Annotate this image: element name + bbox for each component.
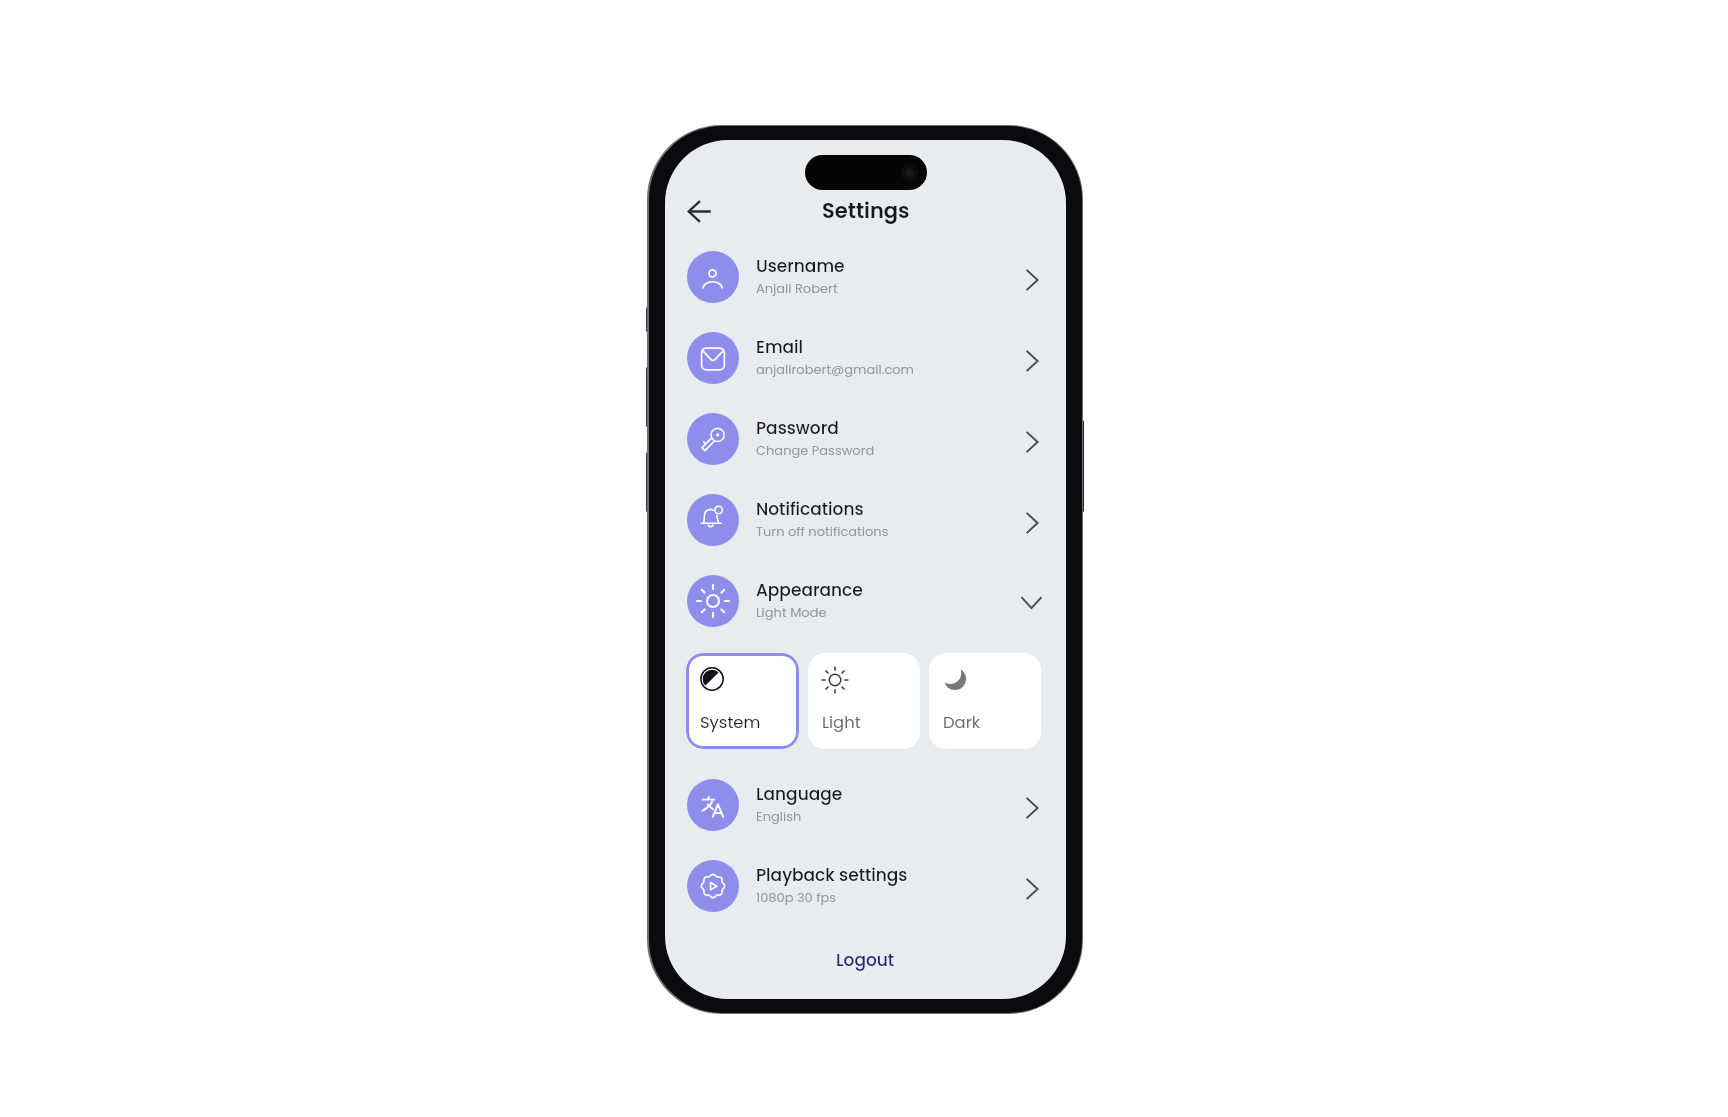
staticText: Light Mode [756,603,827,621]
button[interactable]: System [686,653,799,749]
other: Open [1020,797,1042,819]
button[interactable]: Notifications [665,479,1066,560]
staticText: Email [756,335,804,359]
button[interactable]: Username [665,236,1066,317]
button[interactable]: Playback settings [665,845,1066,926]
button[interactable]: Back [676,188,722,234]
other: Open [1020,878,1042,900]
staticText: 1080p 30 fps [756,888,837,906]
other: Open [1020,512,1042,534]
button[interactable]: Appearance [665,560,1066,641]
staticText: System [700,711,761,734]
other: Open [1020,350,1042,372]
staticText: English [756,807,802,825]
staticText: Settings [822,196,910,225]
button[interactable]: Dark [929,653,1041,749]
button[interactable]: Light [808,653,920,749]
staticText: Dark [943,711,981,734]
staticText: Change Password [756,441,875,459]
staticText: Turn off notifications [756,522,889,540]
staticText: Password [756,416,839,440]
staticText: Playback settings [756,863,908,887]
staticText: Anjali Robert [756,279,838,297]
staticText: Username [756,254,845,278]
other: Open [1020,431,1042,453]
button[interactable]: Email [665,317,1066,398]
staticText: Appearance [756,578,863,602]
staticText: Logout [836,948,895,972]
staticText: Language [756,782,843,806]
button[interactable]: Logout [814,943,917,977]
button[interactable]: Password [665,398,1066,479]
staticText: anjalirobert@gmail.com [756,360,914,378]
button[interactable]: Language [665,764,1066,845]
other: Expand [1021,592,1042,613]
staticText: Notifications [756,497,864,521]
staticText: Light [822,711,861,734]
other: Open [1020,269,1042,291]
